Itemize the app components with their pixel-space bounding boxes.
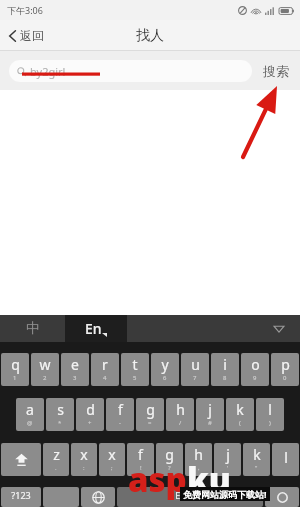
- button[interactable]: x: [99, 443, 125, 476]
- staticText: :: [83, 464, 85, 472]
- staticText: .com: [231, 481, 263, 499]
- button[interactable]: l: [256, 398, 284, 431]
- staticText: ,: [198, 464, 200, 472]
- button[interactable]: y: [151, 353, 179, 386]
- button[interactable]: 返回: [0, 23, 54, 48]
- staticText: l: [268, 400, 272, 419]
- button[interactable]: o: [241, 353, 269, 386]
- staticText: En: [85, 319, 102, 338]
- button[interactable]: k: [243, 443, 270, 476]
- button[interactable]: h: [166, 398, 194, 431]
- button[interactable]: shift: [1, 443, 41, 476]
- staticText: ?123: [11, 489, 31, 501]
- button[interactable]: g: [136, 398, 164, 431]
- button[interactable]: Hide keyboard: [127, 315, 300, 342]
- button[interactable]: globe: [81, 487, 115, 507]
- staticText: ': [227, 464, 229, 472]
- staticText: 0: [283, 374, 287, 382]
- staticText: +: [88, 419, 92, 427]
- other: Hide keyboard: [274, 324, 284, 334]
- button[interactable]: k: [226, 398, 254, 431]
- staticText: ": [255, 464, 258, 472]
- staticText: ): [269, 419, 271, 427]
- button[interactable]: d: [76, 398, 104, 431]
- button[interactable]: a: [16, 398, 44, 431]
- button[interactable]: enter: [265, 487, 299, 507]
- staticText: =: [148, 419, 152, 427]
- staticText: j: [226, 445, 230, 464]
- button[interactable]: i: [211, 353, 239, 386]
- staticText: 7: [193, 374, 197, 382]
- staticText: 6: [163, 374, 167, 382]
- staticText: 5: [133, 374, 137, 382]
- staticText: h: [194, 445, 203, 464]
- button[interactable]: r: [91, 353, 119, 386]
- staticText: p: [281, 355, 290, 374]
- button[interactable]: 中: [0, 315, 65, 342]
- staticText: w: [39, 355, 51, 374]
- button[interactable]: q: [1, 353, 29, 386]
- staticText: k: [236, 400, 244, 419]
- button[interactable]: English: [117, 487, 263, 507]
- staticText: a: [26, 400, 34, 419]
- button[interactable]: h: [185, 443, 212, 476]
- staticText: ?: [168, 464, 171, 472]
- button[interactable]: f: [106, 398, 134, 431]
- button[interactable]: ?123: [1, 487, 41, 507]
- staticText: (: [239, 419, 241, 427]
- staticText: u: [191, 355, 200, 374]
- button[interactable]: x: [71, 443, 97, 476]
- staticText: English: [175, 489, 206, 501]
- staticText: 中: [26, 320, 40, 338]
- staticText: .: [55, 464, 57, 472]
- staticText: g: [146, 400, 155, 419]
- staticText: 免费网站源码下载站!: [183, 488, 267, 500]
- staticText: d: [86, 400, 95, 419]
- button[interactable]: t: [121, 353, 149, 386]
- staticText: 3: [73, 374, 77, 382]
- staticText: k: [253, 445, 261, 464]
- button[interactable]: [43, 487, 79, 507]
- staticText: !: [140, 464, 142, 472]
- button[interactable]: f: [127, 443, 154, 476]
- button[interactable]: e: [61, 353, 89, 386]
- staticText: t: [132, 355, 138, 374]
- button[interactable]: p: [271, 353, 299, 386]
- staticText: asp: [128, 457, 187, 502]
- staticText: x: [80, 445, 88, 464]
- staticText: q: [11, 355, 20, 374]
- staticText: by2girl: [30, 64, 66, 79]
- button[interactable]: s: [46, 398, 74, 431]
- staticText: @: [27, 419, 33, 427]
- staticText: f: [118, 400, 123, 419]
- staticText: 1: [13, 374, 17, 382]
- button[interactable]: g: [156, 443, 183, 476]
- button[interactable]: 搜索: [252, 59, 291, 83]
- button[interactable]: w: [31, 353, 59, 386]
- button[interactable]: En: [65, 315, 127, 342]
- staticText: 9: [253, 374, 257, 382]
- staticText: 搜索: [263, 63, 289, 79]
- staticText: s: [57, 400, 64, 419]
- button[interactable]: z: [43, 443, 69, 476]
- staticText: y: [161, 355, 169, 374]
- staticText: 2: [43, 374, 47, 382]
- staticText: 下午3:06: [7, 4, 43, 16]
- staticText: 返回: [20, 28, 44, 43]
- staticText: 8: [223, 374, 227, 382]
- staticText: f: [138, 445, 143, 464]
- staticText: ku: [187, 457, 231, 502]
- button[interactable]: by2girl: [9, 60, 252, 82]
- button[interactable]: l: [272, 443, 299, 476]
- staticText: x: [108, 445, 116, 464]
- button[interactable]: u: [181, 353, 209, 386]
- staticText: /: [179, 419, 182, 427]
- staticText: j: [208, 400, 212, 419]
- staticText: 4: [103, 374, 107, 382]
- staticText: l: [284, 448, 288, 467]
- staticText: h: [176, 400, 185, 419]
- button[interactable]: j: [214, 443, 241, 476]
- button[interactable]: j: [196, 398, 224, 431]
- staticText: o: [251, 355, 260, 374]
- staticText: g: [165, 445, 174, 464]
